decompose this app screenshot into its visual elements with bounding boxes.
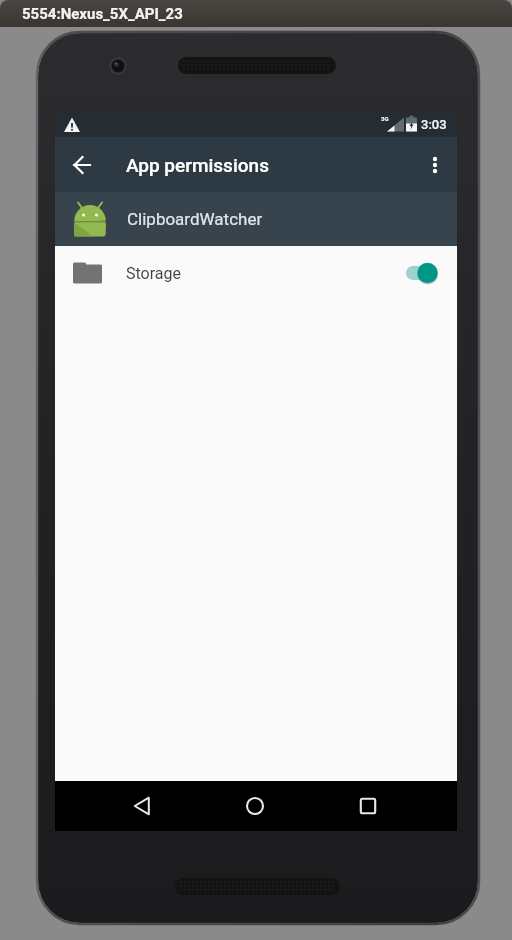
staticText: ClipboardWatcher (127, 209, 263, 229)
staticText: 3:03 (421, 117, 447, 132)
button[interactable] (62, 145, 102, 185)
staticText: 3G (381, 115, 389, 122)
button[interactable] (348, 786, 388, 826)
button[interactable]: Storage (55, 246, 457, 300)
button[interactable] (122, 786, 162, 826)
button[interactable] (403, 261, 441, 285)
button[interactable] (235, 786, 275, 826)
staticText: App permissions (126, 154, 269, 176)
button[interactable]: ClipboardWatcher (55, 192, 457, 246)
staticText: Storage (126, 264, 181, 283)
staticText: 5554:Nexus_5X_API_23 (22, 5, 183, 23)
button[interactable] (415, 145, 455, 185)
